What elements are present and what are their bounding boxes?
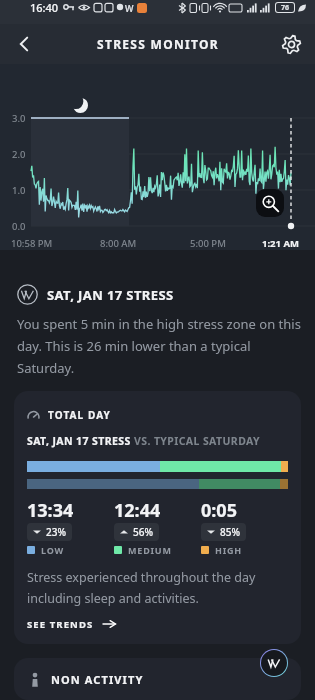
- staticText: VS. TYPICAL SATURDAY: [134, 434, 261, 448]
- staticText: 0.0: [12, 220, 26, 233]
- button[interactable]: Back: [8, 28, 40, 60]
- staticText: NON ACTIVITY: [51, 672, 144, 687]
- staticText: TOTAL DAY: [48, 408, 111, 422]
- staticText: 8:00 AM: [100, 237, 137, 250]
- staticText: 3.0: [12, 112, 26, 125]
- staticText: LOW: [41, 544, 64, 556]
- button[interactable]: Zoom in: [256, 189, 284, 217]
- staticText: 16:40: [30, 0, 59, 15]
- staticText: 23%: [46, 525, 66, 539]
- staticText: HIGH: [215, 544, 242, 556]
- staticText: 1:21 AM: [262, 237, 299, 250]
- staticText: 1.0: [12, 184, 26, 197]
- staticText: 5:00 PM: [190, 237, 226, 250]
- button[interactable]: Whoop coach: [261, 650, 287, 676]
- staticText: STRESS MONITOR: [97, 36, 219, 52]
- staticText: SEE TRENDS: [27, 618, 94, 631]
- staticText: 10:58 PM: [11, 237, 53, 250]
- staticText: W: [125, 2, 134, 14]
- button[interactable]: Settings: [275, 28, 307, 60]
- button[interactable]: NON ACTIVITY: [14, 658, 301, 700]
- staticText: 76: [281, 3, 290, 12]
- staticText: SAT, JAN 17 STRESS: [27, 434, 134, 448]
- staticText: 56%: [133, 525, 153, 539]
- button[interactable]: TOTAL DAY: [14, 391, 301, 644]
- staticText: 2.0: [12, 148, 26, 161]
- button[interactable]: SEE TRENDS: [27, 617, 116, 631]
- staticText: 0:05: [201, 498, 237, 523]
- staticText: 13:34: [27, 498, 74, 523]
- staticText: Stress experienced throughout the day in…: [27, 569, 288, 606]
- staticText: MEDIUM: [128, 544, 172, 556]
- staticText: SAT, JAN 17 STRESS: [47, 286, 174, 304]
- staticText: You spent 5 min in the high stress zone …: [17, 315, 305, 377]
- staticText: 85%: [220, 525, 240, 539]
- staticText: 12:44: [114, 498, 161, 523]
